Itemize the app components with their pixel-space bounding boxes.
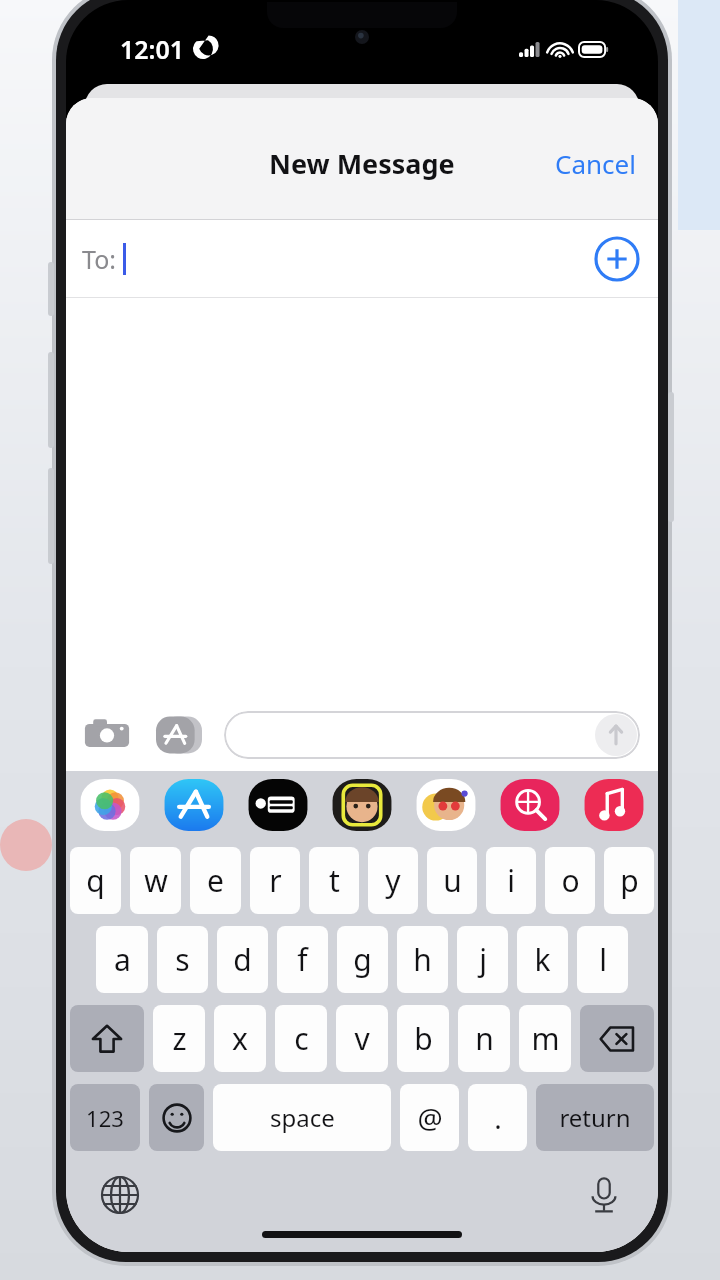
button[interactable]: @ xyxy=(400,1084,459,1151)
staticText: x xyxy=(232,1018,248,1059)
button[interactable]: To: xyxy=(66,220,658,298)
staticText: q xyxy=(86,860,105,901)
staticText: To: xyxy=(82,242,116,276)
staticText: r xyxy=(269,860,282,901)
staticText: y xyxy=(385,860,401,901)
button[interactable]: m xyxy=(519,1005,571,1072)
button[interactable]: . xyxy=(468,1084,527,1151)
staticText: o xyxy=(561,860,580,901)
staticText: m xyxy=(531,1018,560,1059)
button[interactable]: Memoji xyxy=(330,779,394,831)
button[interactable]: s xyxy=(157,926,208,993)
button[interactable]: Images xyxy=(498,779,562,831)
button[interactable]: b xyxy=(397,1005,449,1072)
button[interactable]: x xyxy=(214,1005,266,1072)
button[interactable]: Backspace xyxy=(580,1005,654,1072)
button[interactable]: p xyxy=(604,847,654,914)
staticText: Cancel xyxy=(555,146,636,181)
staticText: n xyxy=(475,1018,494,1059)
button[interactable]: 123 xyxy=(70,1084,140,1151)
button[interactable]: t xyxy=(309,847,359,914)
button[interactable]: j xyxy=(457,926,508,993)
button[interactable]: Camera xyxy=(84,712,130,758)
button[interactable]: y xyxy=(368,847,418,914)
button[interactable]: h xyxy=(397,926,448,993)
button[interactable]: k xyxy=(517,926,568,993)
staticText: a xyxy=(114,939,131,980)
button[interactable]: Memoji stickers xyxy=(414,779,478,831)
staticText: i xyxy=(507,860,515,901)
button[interactable]: c xyxy=(275,1005,327,1072)
staticText: c xyxy=(294,1018,309,1059)
staticText: u xyxy=(443,860,462,901)
staticText: d xyxy=(233,939,252,980)
staticText: k xyxy=(534,939,551,980)
staticText: h xyxy=(413,939,432,980)
button[interactable]: Dictate xyxy=(582,1173,626,1217)
button[interactable]: space xyxy=(213,1084,391,1151)
staticText: f xyxy=(297,939,308,980)
button[interactable]: Shift xyxy=(70,1005,144,1072)
button[interactable]: o xyxy=(545,847,595,914)
button[interactable]: u xyxy=(427,847,477,914)
staticText: v xyxy=(354,1018,370,1059)
staticText: p xyxy=(620,860,639,901)
button[interactable] xyxy=(224,711,640,759)
button[interactable]: l xyxy=(577,926,628,993)
button[interactable]: i xyxy=(486,847,536,914)
button[interactable]: App Store xyxy=(162,779,226,831)
button[interactable]: Change keyboard xyxy=(98,1173,142,1217)
staticText: z xyxy=(172,1018,187,1059)
staticText: b xyxy=(414,1018,433,1059)
button[interactable]: return xyxy=(536,1084,654,1151)
button[interactable]: a xyxy=(96,926,148,993)
button[interactable]: d xyxy=(217,926,268,993)
button[interactable]: w xyxy=(130,847,181,914)
button[interactable]: z xyxy=(153,1005,205,1072)
button[interactable]: e xyxy=(190,847,241,914)
staticText: l xyxy=(599,939,607,980)
button[interactable]: n xyxy=(458,1005,510,1072)
staticText: New Message xyxy=(269,145,455,182)
button[interactable]: Add contact xyxy=(594,236,640,282)
staticText: 12:01 xyxy=(120,32,185,66)
button[interactable]: v xyxy=(336,1005,388,1072)
button[interactable]: Cancel xyxy=(533,134,658,193)
button[interactable]: q xyxy=(70,847,121,914)
button[interactable]: Music xyxy=(582,779,646,831)
button[interactable]: Emoji xyxy=(149,1084,204,1151)
button[interactable]: r xyxy=(250,847,300,914)
button[interactable]: Apple Cash xyxy=(246,779,310,831)
staticText: j xyxy=(479,939,487,980)
staticText: w xyxy=(144,860,168,901)
button[interactable]: Apps xyxy=(156,712,202,758)
button[interactable]: Photos xyxy=(78,779,142,831)
staticText: e xyxy=(207,860,224,901)
button[interactable]: g xyxy=(337,926,388,993)
staticText: t xyxy=(329,860,340,901)
staticText: space xyxy=(270,1101,335,1134)
staticText: s xyxy=(175,939,190,980)
staticText: @ xyxy=(417,1099,443,1137)
staticText: return xyxy=(559,1101,631,1134)
staticText: . xyxy=(494,1099,502,1137)
staticText: 123 xyxy=(86,1103,124,1133)
button[interactable]: f xyxy=(277,926,328,993)
staticText: g xyxy=(353,939,372,980)
